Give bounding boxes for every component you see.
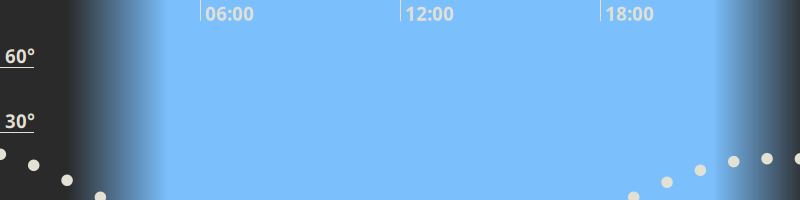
staticText: 12:00 (405, 1, 454, 26)
staticText: 06:00 (205, 1, 254, 26)
staticText: 30° (5, 109, 35, 133)
staticText: 18:00 (605, 1, 654, 26)
staticText: 60° (5, 44, 35, 68)
button[interactable]: Hourly temperature chart (0, 0, 800, 200)
